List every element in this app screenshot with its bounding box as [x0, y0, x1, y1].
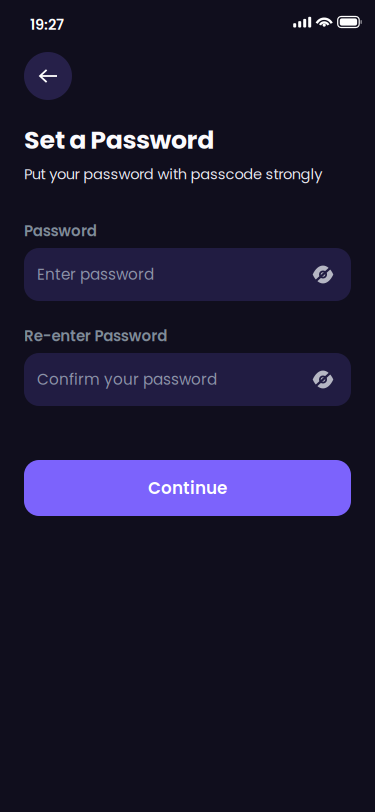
staticText: Password — [24, 220, 97, 242]
staticText: Re-enter Password — [24, 325, 167, 347]
staticText: Set a Password — [24, 122, 214, 158]
staticText: Continue — [148, 476, 227, 500]
button[interactable]: Continue — [24, 460, 351, 516]
staticText: Enter password — [37, 264, 154, 285]
button[interactable]: Show password — [303, 254, 343, 294]
staticText: 19:27 — [30, 14, 64, 35]
staticText: Put your password with passcode strongly — [24, 164, 322, 184]
button[interactable]: Back — [24, 52, 72, 100]
staticText: Confirm your password — [37, 369, 217, 390]
button[interactable]: Show password — [303, 359, 343, 399]
